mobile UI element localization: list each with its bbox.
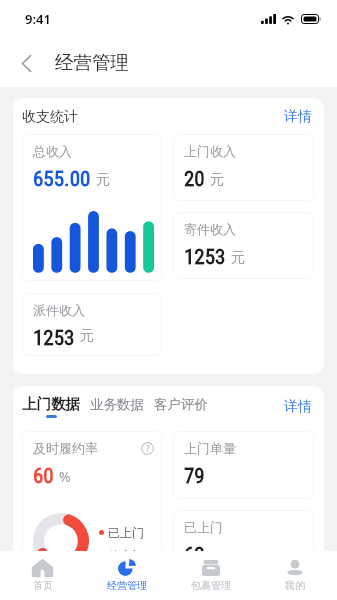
staticText: 655.00 xyxy=(33,167,91,192)
staticText: ? xyxy=(146,443,150,454)
button[interactable]: Back xyxy=(9,46,43,80)
staticText: % xyxy=(59,467,71,486)
button[interactable]: 详情 xyxy=(282,108,314,126)
staticText: 9:41 xyxy=(25,10,51,28)
button[interactable]: 详情 xyxy=(282,398,314,416)
staticText: 元 xyxy=(96,171,110,189)
button[interactable]: Help xyxy=(141,442,154,455)
staticText: 首页 xyxy=(33,579,53,592)
staticText: 上门数据 xyxy=(22,395,80,413)
button[interactable]: 包裹管理 xyxy=(169,551,253,600)
staticText: 1253 xyxy=(184,245,226,270)
staticText: 1253 xyxy=(33,326,75,348)
staticText: 已上门 xyxy=(108,525,144,540)
staticText: 业务数据 xyxy=(90,396,144,413)
staticText: 元 xyxy=(80,327,94,345)
staticText: 总收入 xyxy=(33,143,72,159)
button[interactable]: 总收入 xyxy=(22,134,162,281)
button[interactable]: 上门单量 xyxy=(173,431,314,499)
staticText: 详情 xyxy=(284,108,312,126)
staticText: 元 xyxy=(231,249,245,267)
staticText: 派件收入 xyxy=(33,302,85,318)
button[interactable]: 首页 xyxy=(0,551,85,600)
staticText: 包裹管理 xyxy=(191,579,231,592)
button[interactable]: 及时履约率 xyxy=(22,431,162,581)
button[interactable]: 派件收入 xyxy=(22,293,162,356)
staticText: 79 xyxy=(184,464,205,489)
staticText: 元 xyxy=(210,171,224,189)
staticText: 20 xyxy=(184,167,205,192)
staticText: 我的 xyxy=(285,579,305,592)
staticText: 上门收入 xyxy=(184,143,236,159)
staticText: 60 xyxy=(33,464,54,489)
staticText: 寄件收入 xyxy=(184,221,236,237)
staticText: 详情 xyxy=(284,398,312,416)
button[interactable]: 经营管理 xyxy=(85,551,169,600)
staticText: 已上门 xyxy=(184,519,223,535)
staticText: 收支统计 xyxy=(22,108,78,126)
button[interactable]: 客户评价 xyxy=(154,396,208,418)
button[interactable]: 已上门 xyxy=(173,510,314,578)
staticText: 经营管理 xyxy=(55,51,129,74)
staticText: 上门单量 xyxy=(184,440,236,456)
staticText: 待上门 xyxy=(108,548,144,563)
staticText: 62 xyxy=(184,543,205,568)
staticText: 客户评价 xyxy=(154,396,208,413)
button[interactable]: 上门收入 xyxy=(173,134,314,201)
button[interactable]: 我的 xyxy=(253,551,337,600)
button[interactable]: 上门数据 xyxy=(22,395,80,418)
button[interactable]: 寄件收入 xyxy=(173,212,314,279)
button[interactable]: 业务数据 xyxy=(90,396,144,418)
staticText: 及时履约率 xyxy=(33,440,98,456)
staticText: 经营管理 xyxy=(107,579,147,592)
